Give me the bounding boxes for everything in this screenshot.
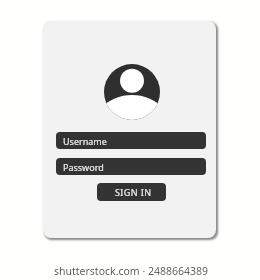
button[interactable]: Password <box>56 158 206 175</box>
button[interactable]: Username <box>56 132 206 149</box>
button[interactable]: SIGN IN <box>97 183 166 201</box>
staticText: shutterstock.com · 2488664389 <box>1 264 260 278</box>
staticText: SIGN IN <box>115 186 152 198</box>
staticText: Username <box>63 135 107 147</box>
staticText: Password <box>63 161 104 173</box>
other: Account avatar <box>104 64 160 120</box>
